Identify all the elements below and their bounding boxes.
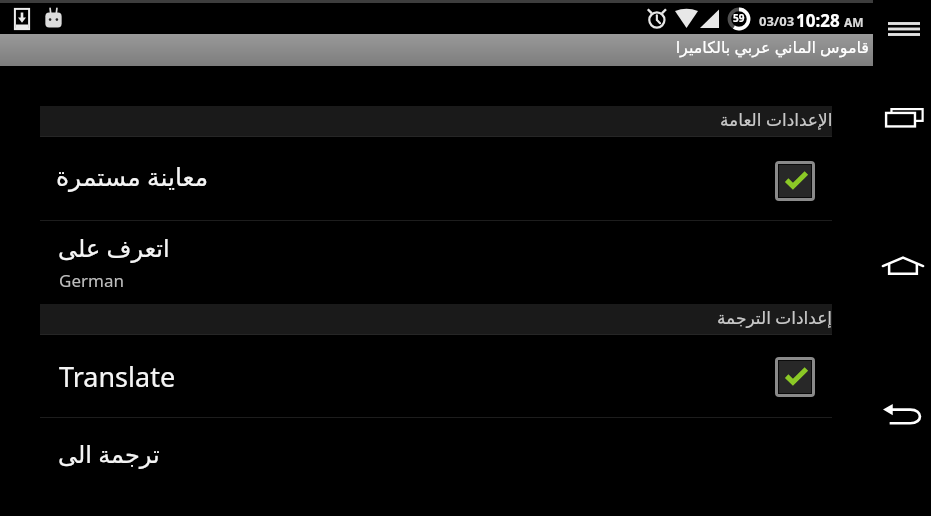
button[interactable]: اتعرف على bbox=[0, 221, 873, 304]
staticText: ترجمة الى bbox=[58, 437, 160, 470]
staticText: 10:28 bbox=[796, 9, 840, 32]
staticText: اتعرف على bbox=[58, 231, 170, 264]
button[interactable]: Toggle bbox=[775, 161, 815, 201]
button[interactable]: Translate bbox=[0, 335, 873, 417]
button[interactable]: Back bbox=[876, 388, 928, 440]
button[interactable]: Menu bbox=[881, 1, 927, 57]
staticText: AM bbox=[844, 14, 864, 30]
button[interactable]: ترجمة الى bbox=[0, 418, 873, 501]
staticText: إعدادات الترجمة bbox=[717, 306, 833, 329]
staticText: German bbox=[59, 269, 124, 292]
staticText: 59 bbox=[733, 11, 745, 25]
button[interactable]: Home bbox=[877, 239, 929, 291]
staticText: 03/03 bbox=[759, 12, 795, 30]
button[interactable]: Toggle bbox=[775, 357, 815, 397]
button[interactable]: معاينة مستمرة bbox=[0, 137, 873, 220]
staticText: قاموس الماني عربي بالكاميرا bbox=[675, 36, 869, 58]
button[interactable]: Recents bbox=[879, 92, 929, 142]
staticText: معاينة مستمرة bbox=[56, 159, 209, 193]
staticText: Translate bbox=[59, 358, 176, 395]
staticText: الإعدادات العامة bbox=[720, 108, 833, 131]
